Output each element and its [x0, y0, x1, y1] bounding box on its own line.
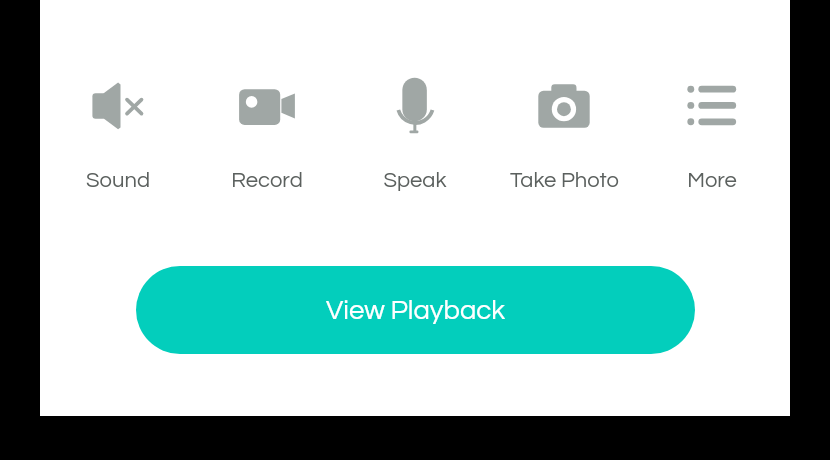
staticText: Sound — [86, 169, 150, 192]
button[interactable]: Record — [192, 76, 342, 192]
button[interactable]: More — [637, 76, 787, 192]
button[interactable]: View Playback — [136, 266, 695, 354]
other: Sound off — [88, 76, 148, 136]
other: Record — [237, 77, 297, 137]
button[interactable]: Speak — [340, 76, 490, 192]
staticText: More — [687, 169, 737, 192]
staticText: Take Photo — [510, 169, 619, 192]
button[interactable]: Take Photo — [489, 76, 639, 192]
staticText: Record — [231, 169, 303, 192]
other: Speak — [385, 76, 445, 136]
staticText: Speak — [383, 169, 447, 192]
button[interactable]: Sound off — [43, 76, 193, 192]
other: More — [682, 75, 742, 135]
other: Take Photo — [534, 76, 594, 136]
staticText: View Playback — [326, 296, 506, 324]
